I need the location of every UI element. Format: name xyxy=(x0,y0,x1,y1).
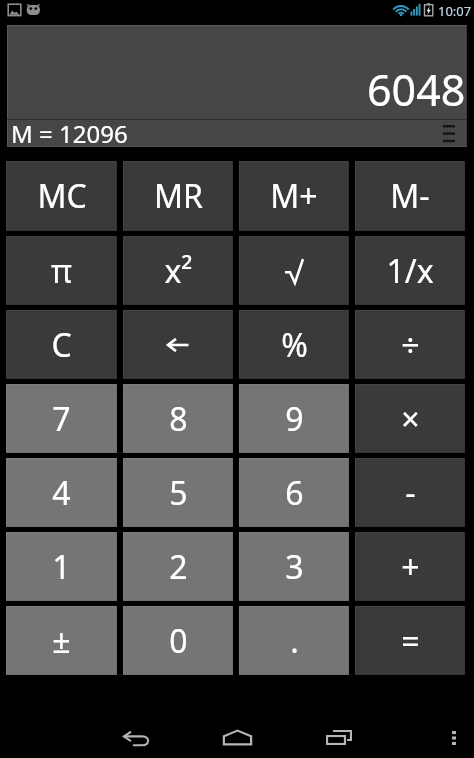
button[interactable]: ÷ xyxy=(355,310,465,379)
button[interactable]: % xyxy=(239,310,349,379)
button[interactable]: 9 xyxy=(239,384,349,453)
staticText: C xyxy=(51,323,72,367)
staticText: 9 xyxy=(285,397,304,441)
staticText: - xyxy=(405,471,416,515)
staticText: ± xyxy=(52,619,71,663)
button[interactable]: 1 xyxy=(6,532,117,601)
button[interactable]: + xyxy=(355,532,465,601)
staticText: × xyxy=(401,397,420,441)
button[interactable]: π xyxy=(6,236,117,305)
button[interactable]: 6 xyxy=(239,458,349,527)
staticText: 8 xyxy=(169,397,188,441)
button[interactable]: 3 xyxy=(239,532,349,601)
button[interactable]: MC xyxy=(6,161,117,231)
other: Backspace xyxy=(167,338,189,352)
button[interactable]: = xyxy=(355,606,465,675)
staticText: 1/x xyxy=(386,249,434,293)
button[interactable]: Home xyxy=(209,709,265,758)
button[interactable]: Memory list xyxy=(437,120,461,147)
button[interactable]: C xyxy=(6,310,117,379)
button[interactable]: 4 xyxy=(6,458,117,527)
staticText: M- xyxy=(390,174,430,218)
button[interactable]: 7 xyxy=(6,384,117,453)
staticText: 7 xyxy=(52,397,71,441)
button[interactable]: Recent apps xyxy=(311,709,367,758)
staticText: 1 xyxy=(52,545,71,589)
button[interactable]: 1/x xyxy=(355,236,465,305)
button[interactable]: More options xyxy=(434,718,474,758)
staticText: % xyxy=(281,323,308,367)
staticText: π xyxy=(51,249,72,293)
button[interactable]: M = 12096 xyxy=(7,120,467,147)
other: Square root xyxy=(285,259,303,283)
staticText: ÷ xyxy=(401,323,420,367)
button[interactable]: ± xyxy=(6,606,117,675)
staticText: 0 xyxy=(169,619,188,663)
staticText: 2 xyxy=(169,545,188,589)
button[interactable]: Backspace xyxy=(123,310,233,379)
staticText: = xyxy=(401,619,420,663)
staticText: x² xyxy=(164,249,193,293)
staticText: 3 xyxy=(285,545,304,589)
button[interactable]: - xyxy=(355,458,465,527)
button[interactable]: . xyxy=(239,606,349,675)
button[interactable]: 0 xyxy=(123,606,233,675)
button[interactable]: x² xyxy=(123,236,233,305)
staticText: MC xyxy=(37,174,87,218)
staticText: MR xyxy=(154,174,203,218)
staticText: 10:07 xyxy=(438,2,472,20)
staticText: M = 12096 xyxy=(11,117,128,144)
button[interactable]: M- xyxy=(355,161,465,231)
button[interactable]: 8 xyxy=(123,384,233,453)
staticText: 6 xyxy=(285,471,304,515)
button[interactable]: 5 xyxy=(123,458,233,527)
button[interactable]: M+ xyxy=(239,161,349,231)
button[interactable]: × xyxy=(355,384,465,453)
button[interactable]: Back xyxy=(108,710,164,758)
staticText: 5 xyxy=(169,471,188,515)
staticText: M+ xyxy=(270,174,318,218)
staticText: 6048 xyxy=(367,60,466,119)
button[interactable]: 2 xyxy=(123,532,233,601)
button[interactable]: MR xyxy=(123,161,233,231)
staticText: 4 xyxy=(52,471,71,515)
staticText: + xyxy=(401,545,420,589)
button[interactable]: Square root xyxy=(239,236,349,305)
staticText: . xyxy=(290,619,299,663)
